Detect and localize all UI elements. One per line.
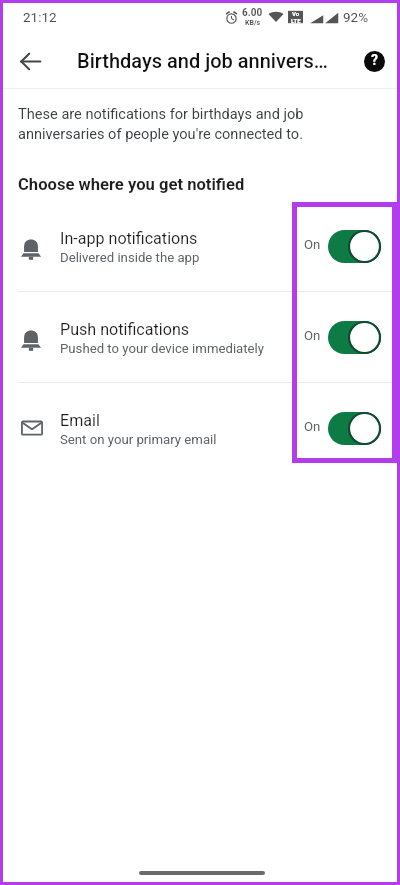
staticText: Email bbox=[60, 411, 100, 430]
staticText: 21:12 bbox=[23, 9, 57, 25]
button[interactable]: Help bbox=[357, 44, 391, 78]
staticText: KB/s bbox=[245, 19, 261, 27]
staticText: Choose where you get notified bbox=[18, 175, 245, 194]
staticText: Push notifications bbox=[60, 320, 190, 339]
staticText: Birthdays and job anniversaries bbox=[77, 49, 338, 72]
staticText: 6.00 bbox=[242, 7, 263, 19]
staticText: On bbox=[304, 419, 321, 434]
button[interactable]: Email bbox=[0, 383, 400, 473]
staticText: Pushed to your device immediately bbox=[60, 341, 265, 356]
button[interactable]: Toggle on bbox=[328, 412, 381, 445]
staticText: On bbox=[304, 237, 321, 252]
staticText: Sent on your primary email bbox=[60, 432, 217, 447]
button[interactable]: Toggle on bbox=[328, 321, 381, 354]
staticText: In-app notifications bbox=[60, 229, 198, 248]
button[interactable]: In-app notifications bbox=[0, 201, 400, 291]
button[interactable]: Back bbox=[10, 41, 50, 81]
staticText: LTE bbox=[291, 17, 301, 24]
staticText: Vo bbox=[292, 10, 300, 17]
button[interactable]: Push notifications bbox=[0, 292, 400, 382]
button[interactable]: Toggle on bbox=[328, 230, 381, 263]
staticText: On bbox=[304, 328, 321, 343]
staticText: ? bbox=[371, 52, 378, 68]
staticText: Delivered inside the app bbox=[60, 250, 200, 265]
staticText: These are notifications for birthdays an… bbox=[18, 105, 360, 142]
staticText: 92% bbox=[343, 9, 369, 25]
